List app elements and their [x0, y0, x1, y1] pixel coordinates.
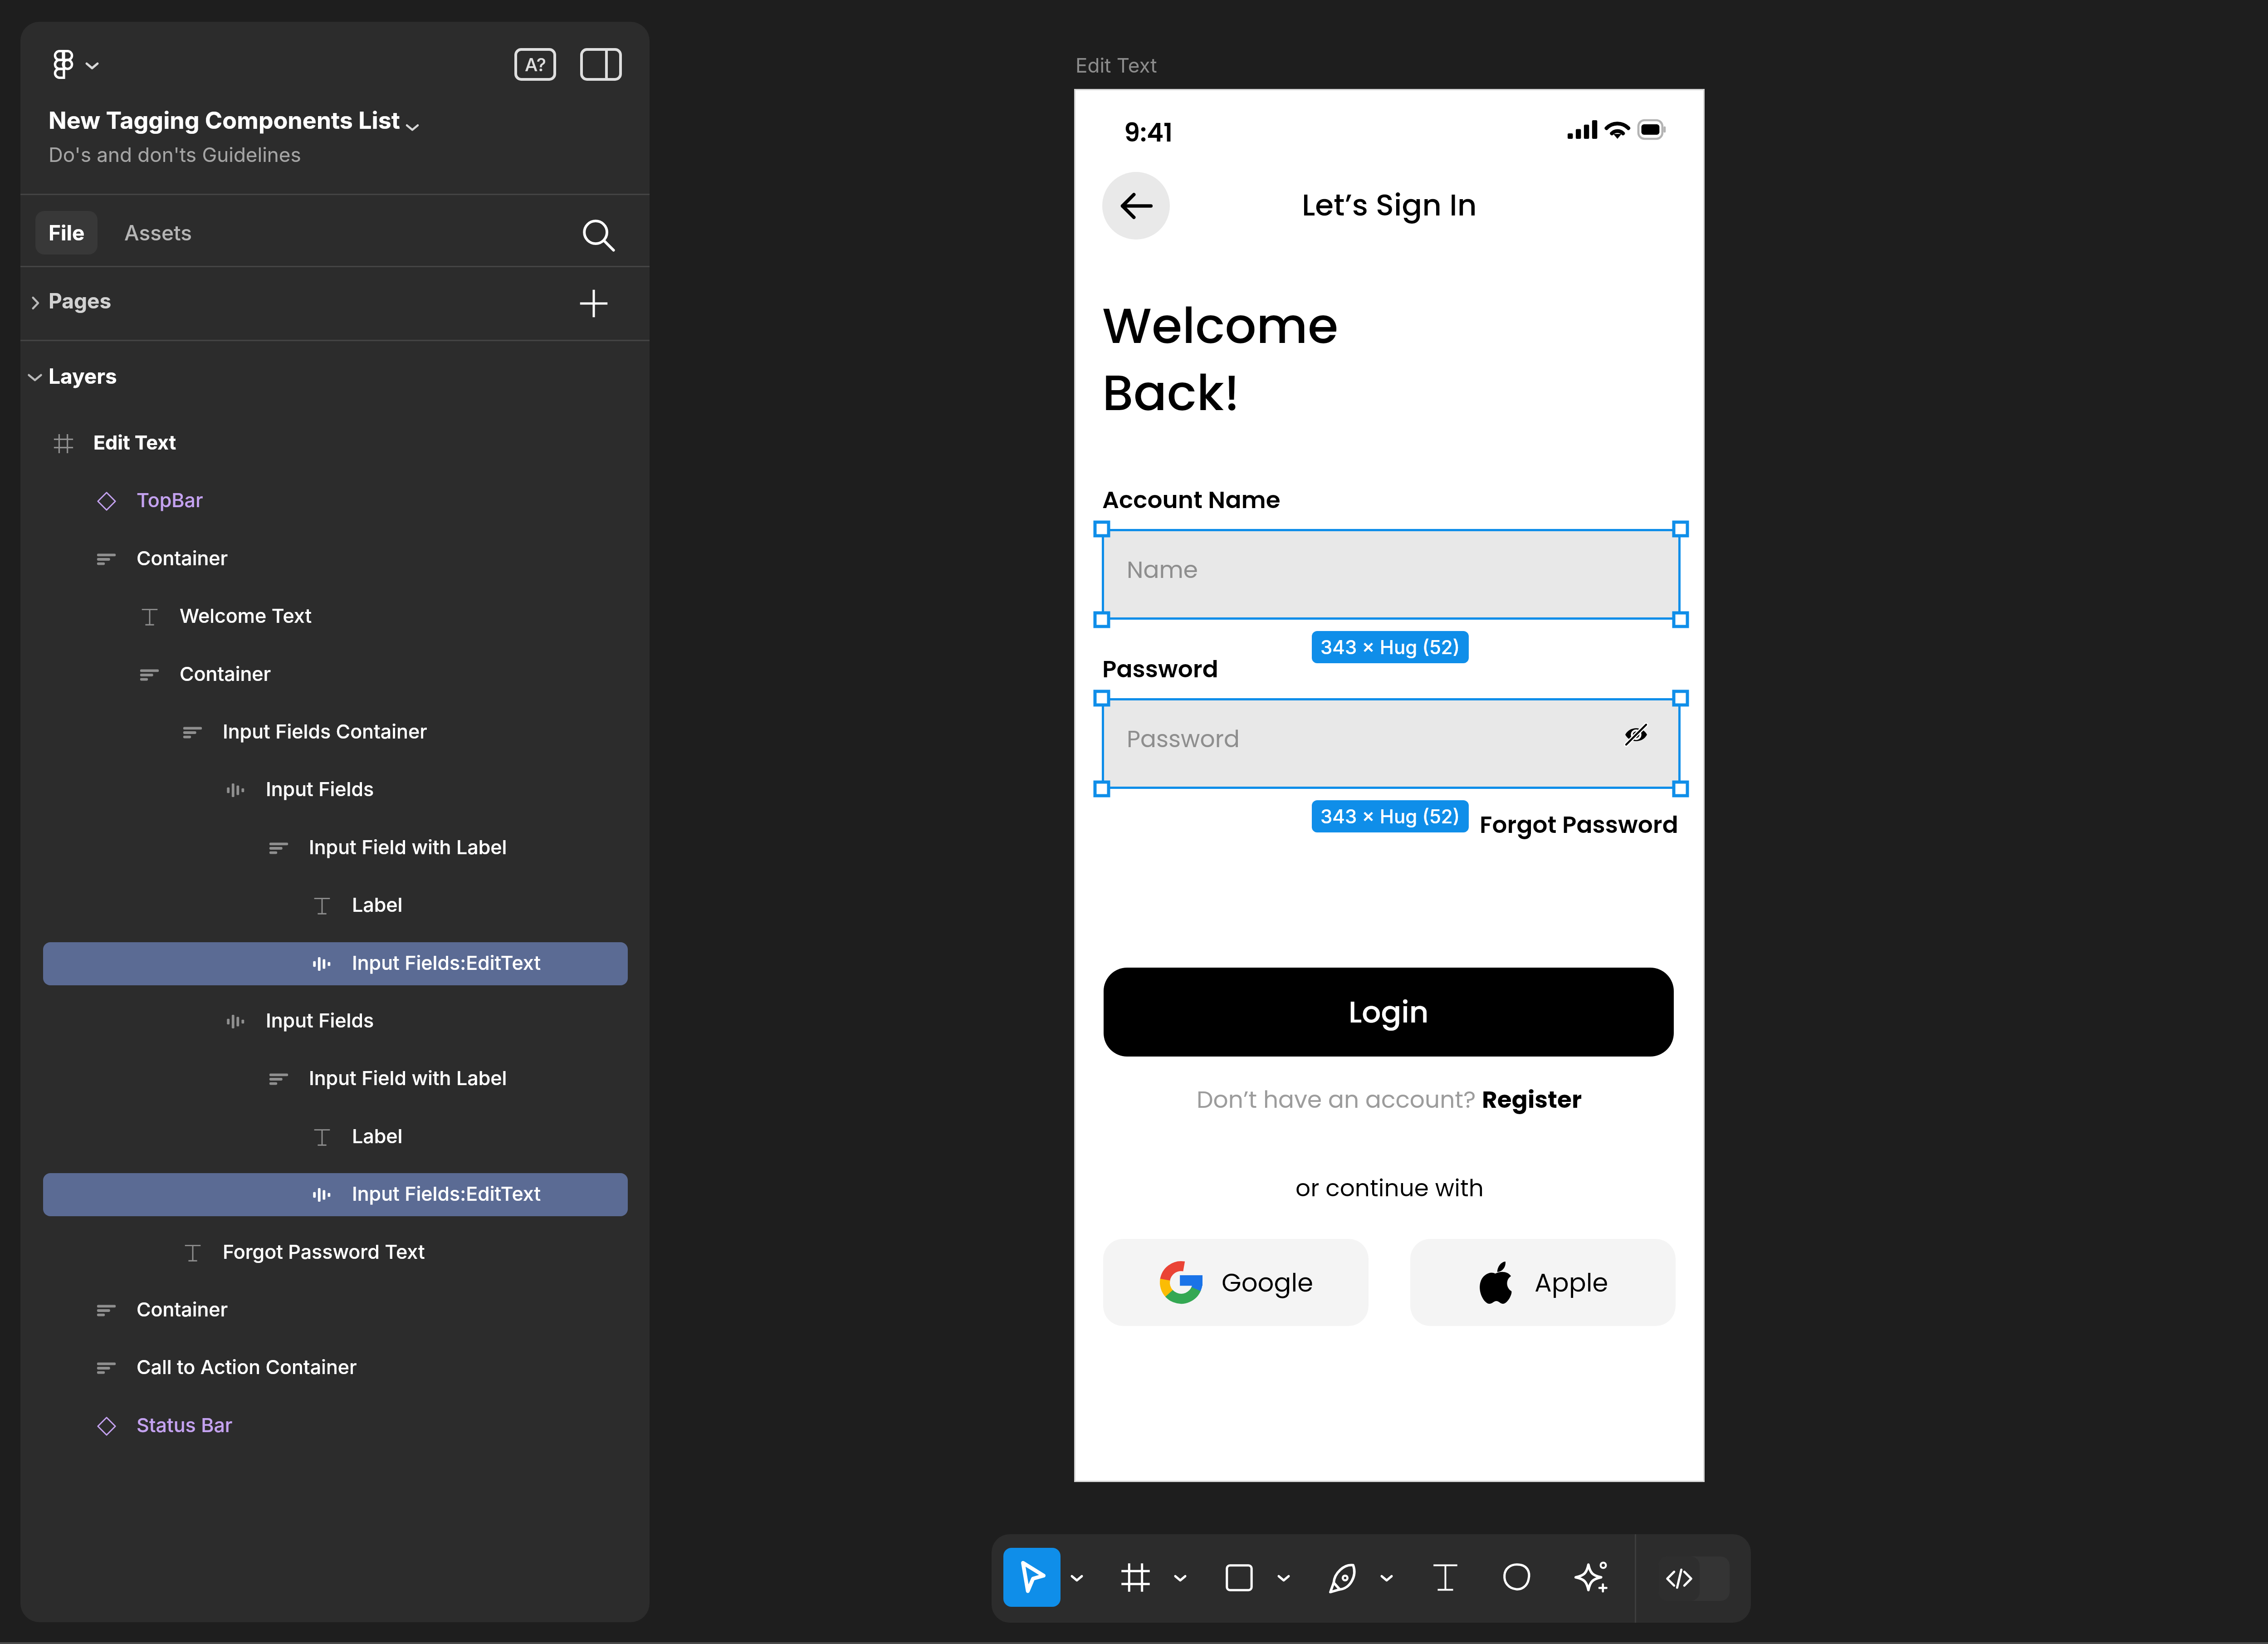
button[interactable]: Welcome Text [20, 588, 650, 646]
staticText: New Tagging Components List [49, 106, 400, 135]
button[interactable]: Pages [20, 267, 650, 340]
staticText: Let’s Sign In [1302, 184, 1477, 226]
staticText: 343 × Hug (52) [1320, 805, 1460, 828]
button[interactable]: Pen tool [1326, 1561, 1360, 1594]
button[interactable]: Assets [115, 211, 201, 254]
staticText: Call to Action Container [137, 1355, 357, 1379]
staticText: Account Name [1102, 484, 1281, 517]
button[interactable]: Password [1102, 698, 1680, 788]
staticText: Assets [124, 220, 192, 245]
button[interactable]: File [35, 211, 98, 254]
button[interactable]: Label [20, 1108, 650, 1166]
button[interactable]: Name [1102, 529, 1680, 619]
staticText: Input Fields:EditText [352, 1182, 541, 1205]
button[interactable]: Frame tool options [1170, 1568, 1190, 1588]
staticText: Google [1222, 1265, 1314, 1301]
staticText: 343 × Hug (52) [1320, 636, 1460, 659]
button[interactable]: Call to Action Container [20, 1339, 650, 1397]
staticText: Input Fields Container [223, 719, 427, 743]
button[interactable]: Layers [20, 348, 650, 406]
staticText: Password [1127, 723, 1240, 756]
button[interactable]: Show password [1625, 724, 1647, 745]
staticText: Label [352, 1124, 403, 1148]
staticText: Edit Text [1075, 53, 1157, 77]
button[interactable]: Back [1102, 172, 1170, 240]
button[interactable]: Move tool options [1067, 1568, 1087, 1588]
button[interactable]: Container [20, 530, 650, 588]
staticText: Welcome Text [180, 604, 312, 627]
staticText: File [49, 220, 85, 245]
staticText: TopBar [137, 488, 203, 512]
button[interactable]: Don’t have an account? Register [1197, 1083, 1582, 1116]
staticText: Container [137, 1297, 228, 1321]
button[interactable]: Input Fields [20, 993, 650, 1050]
button[interactable]: Shape tool [1224, 1562, 1255, 1593]
staticText: Apple [1535, 1265, 1608, 1301]
staticText: or continue with [1295, 1172, 1484, 1205]
button[interactable]: Comment [1501, 1561, 1532, 1594]
button[interactable]: Frame tool [1119, 1561, 1152, 1594]
button[interactable]: Pen tool options [1377, 1568, 1397, 1588]
button[interactable]: Input Fields:EditText [20, 1166, 650, 1223]
staticText: Container [137, 546, 228, 570]
button[interactable]: Status Bar [20, 1397, 650, 1455]
button[interactable]: Input Field with Label [20, 819, 650, 877]
button[interactable]: Add page [577, 287, 610, 320]
button[interactable]: Google [1103, 1239, 1369, 1326]
staticText: Status Bar [137, 1413, 233, 1437]
button[interactable]: Toggle right panel [580, 48, 622, 81]
button[interactable]: Search [579, 216, 618, 255]
button[interactable]: Apple [1410, 1239, 1676, 1326]
button[interactable]: Forgot Password [1480, 808, 1678, 842]
button[interactable]: Container [20, 646, 650, 704]
button[interactable]: Label [20, 877, 650, 935]
staticText: 9:41 [1124, 115, 1173, 151]
button[interactable]: Dev mode [1659, 1556, 1730, 1601]
button[interactable]: Container [20, 1282, 650, 1339]
button[interactable]: TopBar [20, 472, 650, 530]
button[interactable]: Text tool [1429, 1561, 1461, 1594]
button[interactable]: Shape tool options [1274, 1568, 1294, 1588]
button[interactable]: Input Fields [20, 761, 650, 819]
staticText: Name [1127, 553, 1198, 587]
staticText: Pages [49, 288, 112, 313]
button[interactable]: Login [1104, 968, 1674, 1057]
staticText: A? [525, 54, 546, 75]
staticText: Label [352, 893, 403, 916]
staticText: Input Field with Label [309, 835, 507, 859]
button[interactable]: Text review [514, 48, 556, 81]
staticText: Login [1349, 991, 1429, 1033]
button[interactable]: Input Field with Label [20, 1050, 650, 1108]
button[interactable]: Actions [1574, 1560, 1609, 1595]
staticText: Container [180, 662, 271, 685]
button[interactable]: Edit Text [20, 415, 650, 472]
staticText: Input Fields [266, 777, 374, 801]
button[interactable]: Figma menu [53, 50, 74, 79]
button[interactable]: Move tool [1003, 1548, 1061, 1607]
staticText: Layers [49, 363, 117, 389]
staticText: Welcome Back! [1102, 291, 1339, 427]
staticText: Input Field with Label [309, 1066, 507, 1090]
staticText: Do's and don'ts Guidelines [49, 142, 301, 166]
staticText: Input Fields [266, 1008, 374, 1032]
staticText: Password [1102, 653, 1218, 686]
button[interactable]: Input Fields Container [20, 704, 650, 761]
button[interactable]: Forgot Password Text [20, 1224, 650, 1282]
staticText: Edit Text [93, 431, 176, 454]
staticText: Input Fields:EditText [352, 951, 541, 974]
button[interactable]: Input Fields:EditText [20, 935, 650, 993]
staticText: Forgot Password Text [223, 1240, 425, 1263]
